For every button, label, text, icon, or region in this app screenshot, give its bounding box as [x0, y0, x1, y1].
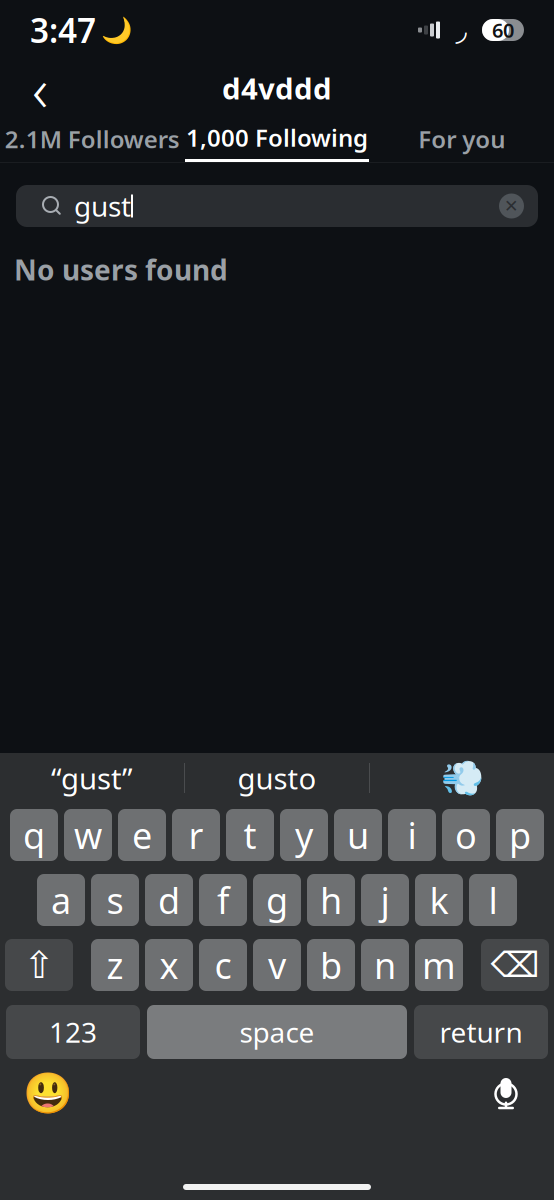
staticText: 🌙 — [101, 15, 133, 44]
button[interactable]: 1,000 Following — [185, 116, 369, 162]
staticText: d4vddd — [222, 68, 332, 107]
button[interactable]: a — [37, 874, 85, 926]
staticText: o — [455, 811, 477, 859]
button[interactable]: k — [415, 874, 463, 926]
button[interactable]: “gust” — [0, 755, 184, 801]
button[interactable]: m — [415, 939, 463, 991]
staticText: w — [74, 811, 102, 859]
staticText: 💨 — [440, 758, 483, 798]
staticText: r — [188, 811, 203, 859]
button[interactable]: h — [307, 874, 355, 926]
staticText: “gust” — [51, 758, 133, 797]
button[interactable]: Emoji keyboard — [20, 1069, 76, 1117]
button[interactable]: ⓘ — [16, 185, 538, 227]
staticText: k — [429, 876, 448, 924]
staticText: l — [488, 876, 497, 924]
staticText: 2.1M Followers — [5, 123, 180, 155]
button[interactable]: c — [199, 939, 247, 991]
staticText: space — [239, 1013, 314, 1051]
button[interactable]: r — [172, 809, 220, 861]
staticText: g — [266, 876, 288, 924]
button[interactable]: s — [91, 874, 139, 926]
staticText: y — [295, 811, 313, 859]
staticText: s — [106, 876, 123, 924]
staticText: ◞ — [455, 13, 466, 47]
staticText: ⌫ — [490, 945, 539, 985]
button[interactable]: o — [442, 809, 490, 861]
button[interactable]: q — [10, 809, 58, 861]
staticText: ‹ — [32, 47, 48, 129]
staticText: return — [439, 1013, 522, 1051]
staticText: b — [320, 941, 342, 989]
button[interactable]: v — [253, 939, 301, 991]
button[interactable]: p — [496, 809, 544, 861]
button[interactable]: return — [414, 1005, 548, 1059]
button[interactable]: b — [307, 939, 355, 991]
staticText: e — [132, 811, 152, 859]
staticText: i — [407, 811, 416, 859]
button[interactable]: space — [147, 1005, 407, 1059]
staticText: z — [106, 941, 123, 989]
button[interactable]: w — [64, 809, 112, 861]
button[interactable]: z — [91, 939, 139, 991]
button[interactable]: t — [226, 809, 274, 861]
staticText: j — [380, 876, 389, 924]
staticText: x — [159, 941, 178, 989]
staticText: gust — [74, 187, 131, 225]
button[interactable]: gusto — [185, 755, 369, 801]
button[interactable]: l — [469, 874, 517, 926]
button[interactable]: y — [280, 809, 328, 861]
button[interactable]: j — [361, 874, 409, 926]
button[interactable]: For you — [369, 116, 554, 162]
staticText: gusto — [237, 758, 316, 797]
button[interactable]: f — [199, 874, 247, 926]
button[interactable]: i — [388, 809, 436, 861]
staticText: For you — [418, 123, 505, 155]
staticText: No users found — [14, 251, 228, 288]
staticText: ✕ — [504, 196, 519, 216]
staticText: 1,000 Following — [186, 122, 368, 153]
staticText: c — [214, 941, 231, 989]
button[interactable]: d — [145, 874, 193, 926]
button[interactable]: e — [118, 809, 166, 861]
staticText: h — [320, 876, 342, 924]
button[interactable]: 2.1M Followers — [0, 116, 185, 162]
staticText: ⇧ — [23, 944, 54, 986]
staticText: d — [158, 876, 180, 924]
button[interactable]: Delete — [481, 939, 549, 991]
button[interactable]: n — [361, 939, 409, 991]
staticText: v — [268, 941, 286, 989]
staticText: a — [51, 876, 71, 924]
staticText: 123 — [49, 1013, 97, 1051]
staticText: n — [374, 941, 396, 989]
button[interactable]: Shift — [5, 939, 73, 991]
button[interactable]: 123 — [6, 1005, 140, 1059]
staticText: t — [243, 811, 256, 859]
staticText: m — [422, 941, 456, 989]
button[interactable]: Dashing away emoji — [370, 755, 554, 801]
button[interactable]: u — [334, 809, 382, 861]
button[interactable]: g — [253, 874, 301, 926]
staticText: 60 — [492, 17, 514, 43]
staticText: u — [347, 811, 369, 859]
staticText: 3:47 — [30, 8, 96, 52]
staticText: f — [217, 876, 229, 924]
staticText: p — [509, 811, 531, 859]
button[interactable]: x — [145, 939, 193, 991]
button[interactable]: Dictation — [478, 1069, 534, 1117]
button[interactable]: Back — [12, 64, 68, 112]
staticText: q — [23, 811, 45, 859]
staticText: 😃 — [23, 1070, 73, 1116]
